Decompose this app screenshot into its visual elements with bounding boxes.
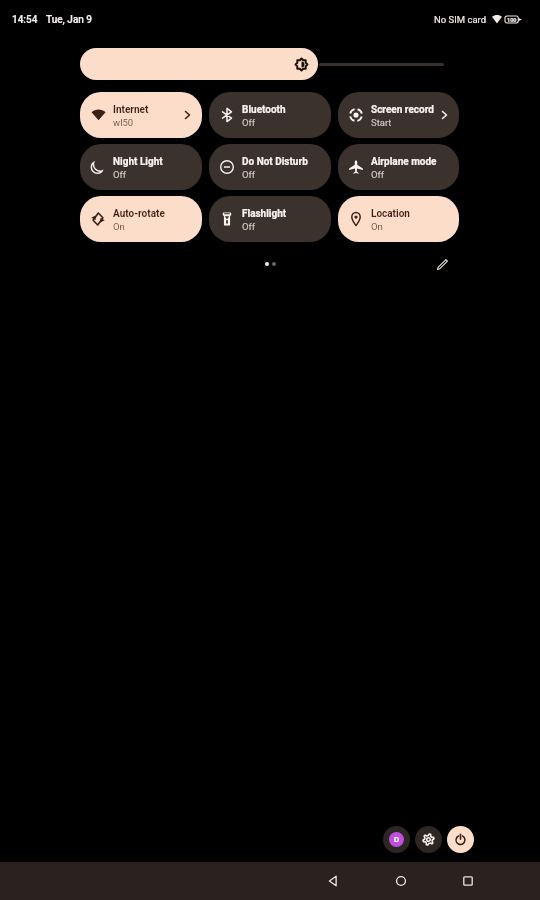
button[interactable]: Bluetooth <box>209 92 331 138</box>
staticText: On <box>113 221 125 232</box>
staticText: No SIM card <box>434 14 487 25</box>
button[interactable]: Do Not Disturb <box>209 144 331 190</box>
button[interactable]: Screen record <box>338 92 459 138</box>
staticText: 14:54 <box>12 14 38 26</box>
button[interactable]: Auto-rotate <box>80 196 202 242</box>
staticText: wl50 <box>113 117 134 128</box>
staticText: Off <box>371 169 385 180</box>
button[interactable]: Power <box>447 826 474 853</box>
button[interactable]: User profile <box>383 826 410 853</box>
staticText: Off <box>242 117 256 128</box>
button[interactable]: Night Light <box>80 144 202 190</box>
button[interactable]: Recents <box>446 862 489 900</box>
staticText: Internet <box>113 104 149 116</box>
staticText: Off <box>242 221 256 232</box>
staticText: Screen record <box>371 104 434 116</box>
staticText: 100 <box>507 17 517 23</box>
staticText: Airplane mode <box>371 156 437 168</box>
staticText: Off <box>113 169 127 180</box>
button[interactable]: Home <box>379 862 422 900</box>
button[interactable]: Flashlight <box>209 196 331 242</box>
button[interactable]: Location <box>338 196 459 242</box>
staticText: Flashlight <box>242 208 287 220</box>
staticText: Tue, Jan 9 <box>46 14 93 26</box>
button[interactable]: Internet <box>80 92 202 138</box>
staticText: Off <box>242 169 256 180</box>
button[interactable]: Back <box>311 862 354 900</box>
staticText: Start <box>371 117 392 128</box>
button[interactable]: Edit tiles <box>432 254 452 274</box>
staticText: Night Light <box>113 156 163 168</box>
staticText: Location <box>371 208 410 220</box>
staticText: Bluetooth <box>242 104 286 116</box>
staticText: D <box>394 835 400 844</box>
button[interactable]: Settings <box>415 826 442 853</box>
button[interactable] <box>80 48 459 80</box>
staticText: Do Not Disturb <box>242 156 308 168</box>
staticText: On <box>371 221 383 232</box>
staticText: Auto-rotate <box>113 208 165 220</box>
button[interactable]: Airplane mode <box>338 144 459 190</box>
